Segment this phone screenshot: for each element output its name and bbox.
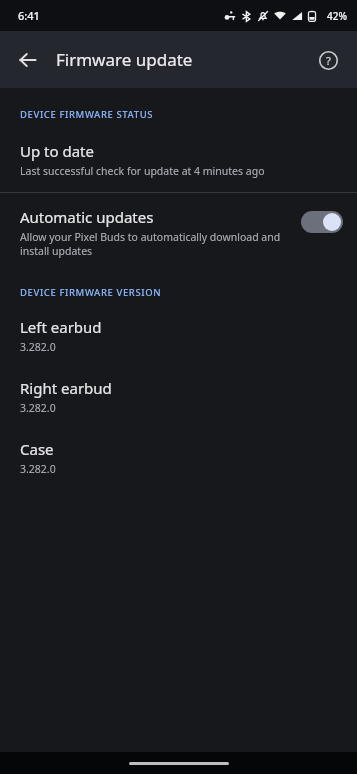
staticText: Automatic updates [20, 207, 154, 227]
button[interactable]: Case [0, 439, 357, 476]
button[interactable]: Left earbud [0, 317, 357, 354]
button[interactable]: Up to date [0, 139, 357, 188]
staticText: DEVICE FIRMWARE VERSION [20, 286, 162, 299]
button[interactable]: Right earbud [0, 378, 357, 415]
staticText: 3.282.0 [20, 401, 56, 415]
staticText: Allow your Pixel Buds to automatically d… [20, 230, 289, 258]
staticText: Case [20, 439, 54, 459]
staticText: Right earbud [20, 378, 112, 398]
staticText: 3.282.0 [20, 462, 56, 476]
button[interactable]: Back [8, 40, 48, 80]
staticText: 6:41 [18, 8, 40, 23]
button[interactable]: Automatic updates [0, 193, 357, 272]
button[interactable]: Help [309, 41, 347, 79]
staticText: Last successful check for update at 4 mi… [20, 164, 265, 178]
staticText: Up to date [20, 141, 94, 161]
staticText: 42% [327, 9, 347, 23]
staticText: Firmware update [56, 48, 193, 71]
staticText: DEVICE FIRMWARE STATUS [20, 108, 154, 121]
staticText: 3.282.0 [20, 340, 56, 354]
button[interactable]: Automatic updates toggle [301, 211, 343, 233]
staticText: ? [326, 53, 331, 68]
staticText: Left earbud [20, 317, 102, 337]
